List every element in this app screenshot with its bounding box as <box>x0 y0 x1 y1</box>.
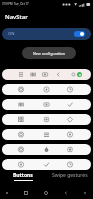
staticText: 7:59 PM Tue, Oct 17 <box>2 2 29 6</box>
staticText: New configuration <box>33 51 66 56</box>
staticText: Buttons <box>13 172 33 179</box>
other: Keyboard <box>83 191 87 195</box>
button[interactable]: Swipe gestures <box>46 169 93 185</box>
button[interactable]: Recents <box>23 190 29 196</box>
button[interactable]: Active <box>77 72 82 77</box>
staticText: NavStar <box>5 13 28 21</box>
button[interactable]: New configuration <box>22 47 76 59</box>
button[interactable]: Back <box>63 190 69 196</box>
button[interactable] <box>2 114 91 125</box>
button[interactable] <box>2 99 91 110</box>
button[interactable] <box>2 84 91 95</box>
button[interactable]: Home <box>43 190 49 196</box>
button[interactable]: Buttons <box>0 169 46 185</box>
button[interactable]: ON <box>2 28 91 40</box>
staticText: Swipe gestures <box>52 172 88 179</box>
button[interactable]: Active <box>2 69 91 80</box>
button[interactable] <box>2 129 91 140</box>
button[interactable] <box>2 144 91 155</box>
staticText: ON <box>8 31 15 37</box>
button[interactable] <box>2 159 91 170</box>
